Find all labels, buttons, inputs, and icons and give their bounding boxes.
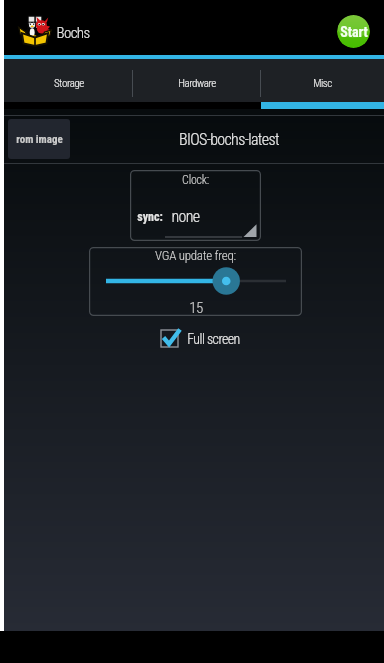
button[interactable]: sync: [135, 203, 257, 238]
button[interactable]: Storage [5, 59, 133, 102]
staticText: Misc [313, 77, 332, 90]
staticText: Full screen [187, 331, 240, 347]
staticText: Clock: [182, 173, 209, 187]
button[interactable]: Misc [261, 59, 384, 102]
button[interactable]: rom image [8, 119, 70, 159]
staticText: sync: [137, 210, 163, 224]
staticText: Hardware [178, 77, 216, 90]
staticText: none [171, 207, 200, 226]
button[interactable]: Start emulator [337, 15, 370, 48]
staticText: Start [340, 24, 368, 40]
button[interactable]: Full screen [158, 327, 240, 350]
staticText: rom image [16, 133, 63, 146]
button[interactable]: VGA update frequency slider [89, 269, 302, 293]
staticText: Storage [54, 77, 84, 90]
staticText: 15 [189, 299, 203, 317]
staticText: Bochs [56, 24, 90, 42]
staticText: BIOS-bochs-latest [179, 130, 279, 149]
staticText: VGA update freq: [155, 248, 236, 263]
button[interactable]: Hardware [133, 59, 261, 102]
